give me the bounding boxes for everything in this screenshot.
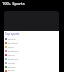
staticText: Top sports	[5, 32, 20, 36]
staticText: Cricket	[8, 54, 15, 57]
staticText: Badminton	[8, 50, 19, 53]
button[interactable]: Swimming	[4, 57, 59, 61]
button[interactable]: Tennis	[4, 45, 59, 49]
staticText: 100+ Sports	[2, 1, 25, 6]
button[interactable]: Cricket	[4, 53, 59, 57]
button[interactable]: Football	[4, 37, 59, 41]
staticText: Swimming	[8, 58, 18, 61]
button[interactable]: Badminton	[4, 49, 59, 53]
button[interactable]: Boxing	[4, 69, 59, 72]
staticText: Hockey	[8, 62, 15, 65]
staticText: Tennis	[8, 46, 15, 49]
button[interactable]: Baseball	[4, 65, 59, 69]
staticText: Boxing	[8, 69, 15, 72]
button[interactable]: Hockey	[4, 61, 59, 65]
staticText: Baseball	[8, 66, 16, 69]
button[interactable]: Basketball	[4, 41, 59, 45]
staticText: Basketball	[8, 42, 18, 45]
staticText: Football	[8, 38, 16, 41]
